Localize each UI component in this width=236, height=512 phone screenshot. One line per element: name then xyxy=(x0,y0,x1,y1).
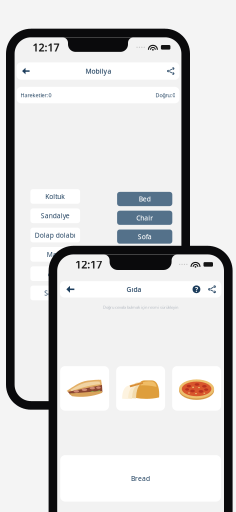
staticText: 12:17 xyxy=(33,40,60,54)
button[interactable]: Bread xyxy=(116,366,165,411)
button[interactable]: Back xyxy=(63,283,77,296)
staticText: Mobilya xyxy=(85,67,111,75)
button[interactable]: Sandık xyxy=(30,286,80,300)
staticText: Chest xyxy=(136,289,154,297)
staticText: Dolap dolabı xyxy=(35,231,76,239)
staticText: Bed xyxy=(139,195,151,203)
button[interactable]: Help xyxy=(190,283,202,296)
button[interactable]: Chair xyxy=(117,211,172,225)
staticText: Table xyxy=(136,251,153,260)
button[interactable]: Table xyxy=(117,248,172,262)
button[interactable]: Masa xyxy=(30,247,80,262)
staticText: 12:17 xyxy=(75,257,102,271)
button[interactable]: Share xyxy=(206,283,218,295)
staticText: Sandık xyxy=(44,288,66,297)
button[interactable]: Ayna xyxy=(30,266,80,281)
staticText: Gıda xyxy=(126,285,141,294)
button[interactable]: Bed xyxy=(117,192,172,206)
button[interactable]: Sandwich xyxy=(60,366,109,411)
button[interactable]: Bread xyxy=(60,455,221,502)
button[interactable]: Chest xyxy=(117,286,172,300)
staticText: Bread xyxy=(131,474,150,483)
button[interactable]: Sofa xyxy=(117,229,172,244)
button[interactable]: Koltuk xyxy=(30,189,80,204)
staticText: Chair xyxy=(136,213,153,222)
staticText: Hareketler: 0 xyxy=(21,92,52,99)
button[interactable]: Mirror xyxy=(117,267,172,281)
staticText: Sofa xyxy=(138,232,152,241)
staticText: Ayna xyxy=(48,269,63,278)
staticText: Doğru cevabı bulmak için resmi sürükleyi… xyxy=(103,304,178,310)
button[interactable]: Share xyxy=(165,65,176,77)
button[interactable]: Sandalye xyxy=(30,208,80,223)
button[interactable]: Dolap dolabı xyxy=(30,228,80,242)
staticText: Koltuk xyxy=(45,192,65,201)
staticText: Doğru: 0 xyxy=(155,92,175,99)
staticText: Sandalye xyxy=(41,211,70,220)
staticText: Masa xyxy=(47,250,64,259)
button[interactable]: Back xyxy=(20,65,32,77)
button[interactable]: Pizza xyxy=(172,366,221,411)
staticText: ? xyxy=(195,285,198,294)
